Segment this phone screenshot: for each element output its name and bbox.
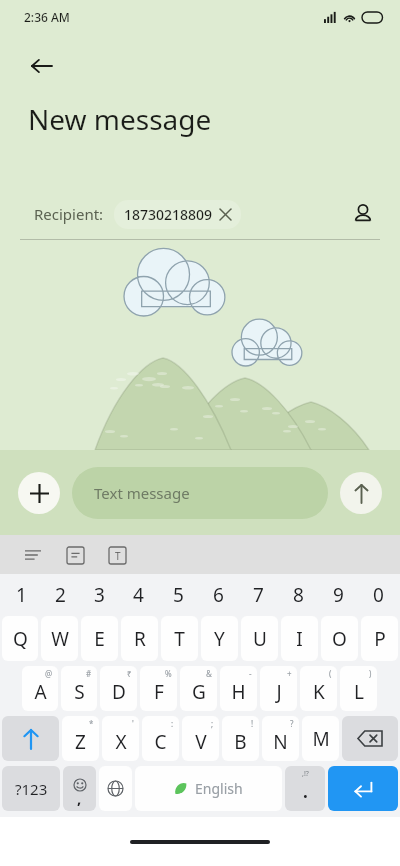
staticText: ,: [77, 788, 82, 808]
staticText: M: [312, 726, 330, 752]
button[interactable]: O: [321, 616, 358, 661]
button[interactable]: ): [340, 666, 377, 711]
button[interactable]: U: [241, 616, 278, 661]
button[interactable]: :: [142, 716, 179, 761]
staticText: ;: [211, 718, 214, 729]
staticText: P: [374, 626, 386, 652]
button[interactable]: Back: [24, 48, 60, 84]
button[interactable]: Enter: [328, 766, 398, 811]
button[interactable]: 5: [158, 574, 198, 616]
staticText: 1: [16, 582, 27, 608]
button[interactable]: T: [161, 616, 198, 661]
staticText: +: [287, 668, 292, 679]
button[interactable]: E: [81, 616, 118, 661]
button[interactable]: Clipboard: [60, 540, 90, 570]
staticText: R: [134, 626, 146, 652]
staticText: W: [51, 626, 69, 652]
staticText: A: [34, 679, 47, 705]
button[interactable]: #: [61, 666, 97, 711]
button[interactable]: Shift: [2, 716, 59, 761]
button[interactable]: %: [140, 666, 177, 711]
button[interactable]: M: [302, 716, 339, 761]
button[interactable]: 8: [278, 574, 318, 616]
button[interactable]: Menu: [18, 540, 48, 570]
button[interactable]: I: [281, 616, 318, 661]
staticText: -: [249, 668, 252, 679]
button[interactable]: 2: [41, 574, 80, 616]
staticText: 5: [173, 582, 184, 608]
staticText: 8: [293, 582, 304, 608]
staticText: ': [132, 718, 134, 729]
button[interactable]: @: [22, 666, 58, 711]
staticText: ₹: [127, 668, 132, 679]
button[interactable]: +: [260, 666, 297, 711]
staticText: Q: [13, 626, 28, 652]
staticText: ?123: [15, 779, 48, 799]
button[interactable]: 7: [238, 574, 278, 616]
staticText: L: [354, 679, 364, 705]
staticText: #: [86, 668, 92, 679]
staticText: J: [276, 679, 282, 705]
button[interactable]: Send: [340, 472, 382, 514]
button[interactable]: Q: [2, 616, 38, 661]
button[interactable]: (: [300, 666, 337, 711]
button[interactable]: W: [41, 616, 78, 661]
staticText: O: [332, 626, 347, 652]
staticText: F: [154, 679, 164, 705]
staticText: :: [171, 718, 174, 729]
button[interactable]: 9: [318, 574, 358, 616]
button[interactable]: R: [121, 616, 158, 661]
button[interactable]: Emoji: [63, 766, 96, 811]
staticText: 9: [333, 582, 344, 608]
button[interactable]: ;: [182, 716, 219, 761]
staticText: U: [253, 626, 267, 652]
staticText: %: [165, 668, 172, 679]
staticText: B: [234, 729, 247, 755]
staticText: @: [45, 668, 53, 679]
button[interactable]: Text editing: [102, 540, 132, 570]
staticText: 18730218809: [124, 205, 213, 224]
staticText: Z: [75, 729, 86, 755]
button[interactable]: ?: [262, 716, 299, 761]
staticText: 0: [373, 582, 384, 608]
staticText: .: [303, 780, 308, 803]
button[interactable]: Backspace: [342, 716, 398, 761]
button[interactable]: 1: [2, 574, 41, 616]
button[interactable]: *: [62, 716, 99, 761]
button[interactable]: .: [285, 766, 325, 811]
staticText: ): [369, 668, 372, 679]
button[interactable]: 6: [198, 574, 238, 616]
staticText: C: [154, 729, 167, 755]
button[interactable]: 3: [80, 574, 119, 616]
staticText: G: [192, 679, 206, 705]
staticText: ?: [290, 718, 294, 729]
button[interactable]: Y: [201, 616, 238, 661]
staticText: 6: [213, 582, 224, 608]
button[interactable]: ₹: [100, 666, 137, 711]
button[interactable]: !: [222, 716, 259, 761]
staticText: !: [251, 718, 254, 729]
button[interactable]: &: [180, 666, 217, 711]
button[interactable]: Text message: [72, 467, 328, 519]
staticText: &: [206, 668, 212, 679]
button[interactable]: 0: [358, 574, 398, 616]
staticText: 2:36 AM: [24, 9, 70, 25]
staticText: S: [74, 679, 85, 705]
button[interactable]: Add attachment: [18, 472, 60, 514]
button[interactable]: Change language: [99, 766, 132, 811]
staticText: H: [231, 679, 246, 705]
button[interactable]: -: [220, 666, 257, 711]
staticText: English: [195, 779, 243, 798]
button[interactable]: P: [361, 616, 398, 661]
staticText: N: [273, 729, 288, 755]
staticText: D: [112, 679, 126, 705]
button[interactable]: Contacts: [346, 197, 380, 231]
button[interactable]: ?123: [2, 766, 60, 811]
button[interactable]: English: [135, 766, 282, 811]
button[interactable]: 4: [119, 574, 158, 616]
staticText: I: [296, 626, 303, 652]
staticText: X: [115, 729, 127, 755]
staticText: 3: [94, 582, 105, 608]
button[interactable]: ': [102, 716, 139, 761]
button[interactable]: 18730218809: [114, 200, 241, 229]
